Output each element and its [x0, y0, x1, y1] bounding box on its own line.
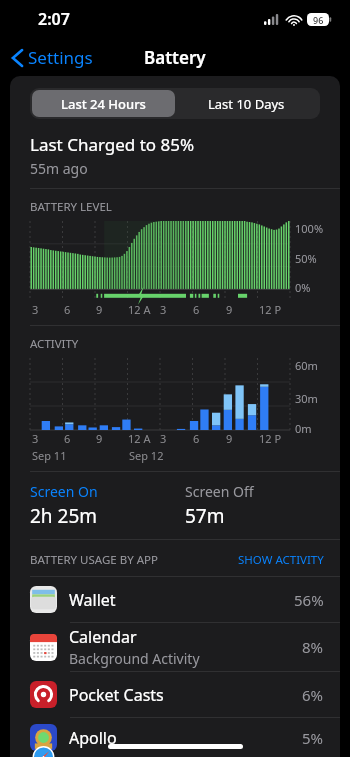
staticText: 12 A [128, 431, 151, 446]
staticText: 3 [160, 302, 167, 317]
staticText: BATTERY USAGE BY APP [30, 552, 158, 568]
staticText: 2:07 [38, 8, 70, 30]
staticText: Sep 11 [32, 448, 67, 463]
staticText: Last 10 Days [208, 95, 285, 113]
button[interactable]: Apollo [10, 718, 340, 757]
staticText: BATTERY LEVEL [30, 199, 112, 215]
staticText: 3 [32, 431, 39, 446]
button[interactable]: Last 24 Hours [32, 90, 175, 117]
staticText: 5% [302, 728, 324, 748]
staticText: 50% [295, 251, 317, 266]
staticText: 60m [295, 358, 318, 373]
staticText: 12 A [128, 302, 151, 317]
button[interactable]: SHOW ACTIVITY [238, 552, 324, 568]
staticText: Background Activity [69, 649, 200, 668]
button[interactable]: Calendar [10, 623, 340, 671]
staticText: Apollo [69, 727, 117, 749]
staticText: 3 [160, 431, 167, 446]
button[interactable]: Wallet [10, 577, 340, 622]
staticText: 6 [193, 302, 200, 317]
staticText: 9 [96, 302, 103, 317]
staticText: 6 [64, 431, 71, 446]
staticText: 2h 25m [30, 503, 98, 529]
staticText: 6 [193, 431, 200, 446]
staticText: 100% [295, 221, 324, 236]
staticText: 6 [64, 302, 71, 317]
staticText: Last Charged to 85% [30, 133, 195, 156]
staticText: 12 P [259, 302, 282, 317]
button[interactable]: Pocket Casts [10, 672, 340, 717]
staticText: 9 [226, 431, 233, 446]
staticText: 3 [32, 302, 39, 317]
staticText: 30m [295, 391, 318, 406]
staticText: Pocket Casts [69, 684, 164, 706]
staticText: Calendar [69, 626, 137, 648]
staticText: Wallet [69, 589, 116, 611]
staticText: Battery [144, 46, 206, 69]
button[interactable]: Last 10 Days [175, 90, 318, 117]
staticText: 0m [295, 421, 312, 436]
staticText: ACTIVITY [30, 336, 79, 352]
staticText: Screen On [30, 482, 98, 501]
staticText: 96 [313, 14, 324, 26]
staticText: 0% [295, 280, 311, 295]
staticText: Settings [28, 46, 93, 69]
staticText: 56% [294, 590, 324, 610]
staticText: 57m [185, 503, 225, 529]
staticText: Screen Off [185, 482, 254, 501]
staticText: 12 P [259, 431, 282, 446]
staticText: Sep 12 [129, 448, 164, 463]
staticText: SHOW ACTIVITY [238, 552, 324, 568]
staticText: 55m ago [30, 159, 88, 178]
staticText: 6% [302, 685, 324, 705]
button[interactable]: Settings [8, 42, 97, 73]
staticText: Last 24 Hours [61, 95, 146, 113]
staticText: 8% [302, 637, 324, 657]
staticText: 9 [226, 302, 233, 317]
staticText: 9 [96, 431, 103, 446]
